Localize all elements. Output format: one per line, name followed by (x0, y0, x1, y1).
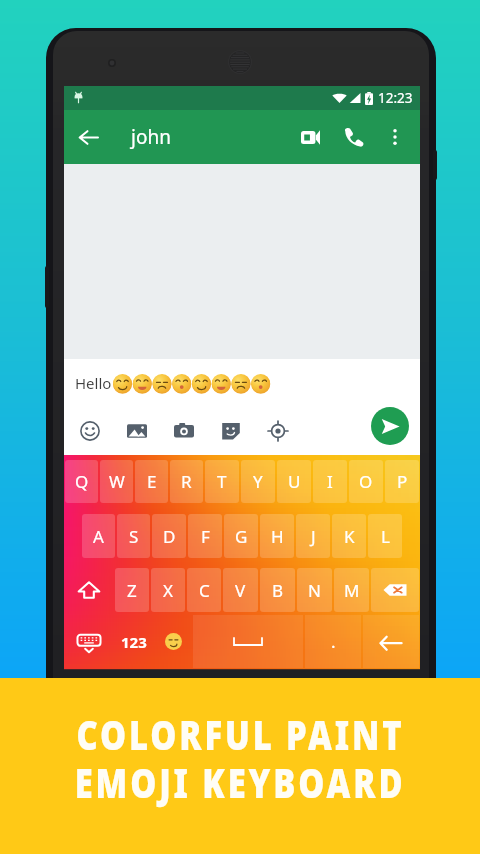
staticText: Q (75, 470, 89, 493)
button[interactable]: Switch keyboard (64, 615, 114, 668)
staticText: K (344, 525, 355, 548)
button[interactable]: X (151, 568, 185, 612)
button[interactable]: Enter (363, 615, 419, 668)
button[interactable]: L (368, 514, 402, 558)
button[interactable]: P (385, 460, 419, 503)
button[interactable]: . (305, 615, 361, 668)
button[interactable]: E (135, 460, 168, 503)
button[interactable]: K (332, 514, 366, 558)
staticText: E (147, 470, 157, 493)
staticText: G (235, 525, 248, 548)
button[interactable]: T (205, 460, 239, 503)
button[interactable]: Backspace (371, 568, 419, 612)
staticText: W (109, 470, 125, 493)
staticText: I (327, 470, 333, 493)
staticText: X (163, 579, 173, 602)
staticText: 12:23 (378, 89, 413, 107)
staticText: Y (253, 470, 263, 493)
button[interactable]: D (152, 514, 186, 558)
staticText: N (308, 579, 321, 602)
button[interactable]: Y (241, 460, 275, 503)
button[interactable]: Sticker (218, 418, 244, 444)
button[interactable]: O (349, 460, 383, 503)
button[interactable]: More options (376, 118, 414, 156)
button[interactable]: Space (193, 615, 303, 668)
staticText: P (397, 470, 408, 493)
staticText: S (129, 525, 139, 548)
button[interactable]: Camera (171, 418, 197, 444)
staticText: J (311, 525, 316, 548)
button[interactable]: V (223, 568, 258, 612)
button[interactable]: Back (64, 113, 112, 161)
staticText: O (359, 470, 373, 493)
button[interactable]: W (100, 460, 133, 503)
staticText: . (331, 630, 336, 653)
staticText: H (271, 525, 284, 548)
staticText: 123 (121, 632, 147, 652)
button[interactable]: M (334, 568, 369, 612)
staticText: L (381, 525, 390, 548)
button[interactable]: Video call (288, 115, 332, 159)
staticText: Hello (75, 373, 112, 393)
button[interactable]: Shift (64, 566, 114, 614)
staticText: T (217, 470, 227, 493)
button[interactable]: Call (332, 115, 376, 159)
staticText: U (288, 470, 301, 493)
button[interactable]: R (170, 460, 203, 503)
button[interactable]: B (260, 568, 295, 612)
button[interactable]: Q (65, 460, 98, 503)
button[interactable]: I (313, 460, 347, 503)
button[interactable]: Emoji (154, 615, 192, 668)
button[interactable]: Emoji (77, 418, 103, 444)
staticText: R (181, 470, 192, 493)
button[interactable]: Z (115, 568, 149, 612)
staticText: john (131, 124, 171, 150)
button[interactable]: Gallery (124, 418, 150, 444)
button[interactable]: Location (265, 418, 291, 444)
staticText: Z (127, 579, 137, 602)
button[interactable]: N (297, 568, 332, 612)
staticText: A (93, 525, 104, 548)
button[interactable]: S (117, 514, 150, 558)
staticText: D (163, 525, 176, 548)
button[interactable]: G (224, 514, 258, 558)
staticText: B (272, 579, 284, 602)
button[interactable]: Send (371, 407, 409, 445)
staticText: V (235, 579, 246, 602)
button[interactable]: J (296, 514, 330, 558)
staticText: COLORFUL PAINT (76, 706, 405, 762)
button[interactable]: C (187, 568, 221, 612)
staticText: EMOJI KEYBOARD (74, 754, 406, 810)
button[interactable]: A (82, 514, 115, 558)
staticText: M (344, 579, 360, 602)
staticText: F (201, 525, 210, 548)
button[interactable]: 123 (114, 615, 154, 668)
staticText: C (199, 579, 210, 602)
button[interactable]: H (260, 514, 294, 558)
button[interactable]: U (277, 460, 311, 503)
button[interactable]: F (188, 514, 222, 558)
